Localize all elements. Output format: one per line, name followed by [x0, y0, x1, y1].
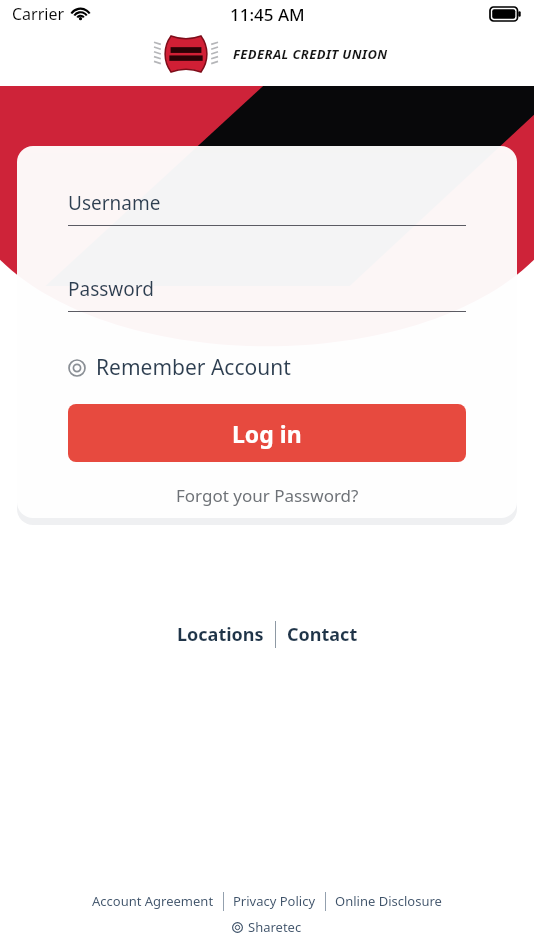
- button[interactable]: Member Preferred Federal Credit Union: [0, 24, 534, 84]
- staticText: Contact: [287, 622, 358, 647]
- button[interactable]: Online Disclosure: [326, 887, 451, 915]
- staticText: FEDERAL CREDIT UNION: [233, 45, 388, 63]
- button[interactable]: Log in: [68, 404, 466, 462]
- staticText: Remember Account: [96, 353, 291, 382]
- staticText: Username: [68, 190, 161, 216]
- button[interactable]: Privacy Policy: [224, 887, 325, 915]
- button[interactable]: Password: [68, 276, 466, 312]
- staticText: Online Disclosure: [335, 892, 442, 910]
- staticText: Password: [68, 276, 154, 302]
- button[interactable]: Username: [68, 190, 466, 226]
- button[interactable]: Account Agreement: [83, 887, 223, 915]
- staticText: Account Agreement: [92, 892, 214, 910]
- button[interactable]: Forgot your Password?: [68, 478, 466, 513]
- button[interactable]: Locations: [166, 616, 275, 653]
- staticText: Sharetec: [248, 918, 302, 936]
- button[interactable]: Contact: [276, 616, 369, 653]
- staticText: Forgot your Password?: [176, 484, 359, 507]
- button[interactable]: Remember Account: [68, 353, 291, 382]
- staticText: Log in: [232, 418, 302, 449]
- staticText: Locations: [177, 622, 264, 647]
- other: Wi-Fi signal: [72, 8, 89, 21]
- staticText: Privacy Policy: [233, 892, 316, 910]
- staticText: 11:45 AM: [230, 3, 305, 26]
- other: Battery full: [490, 7, 521, 21]
- staticText: Carrier: [12, 3, 65, 25]
